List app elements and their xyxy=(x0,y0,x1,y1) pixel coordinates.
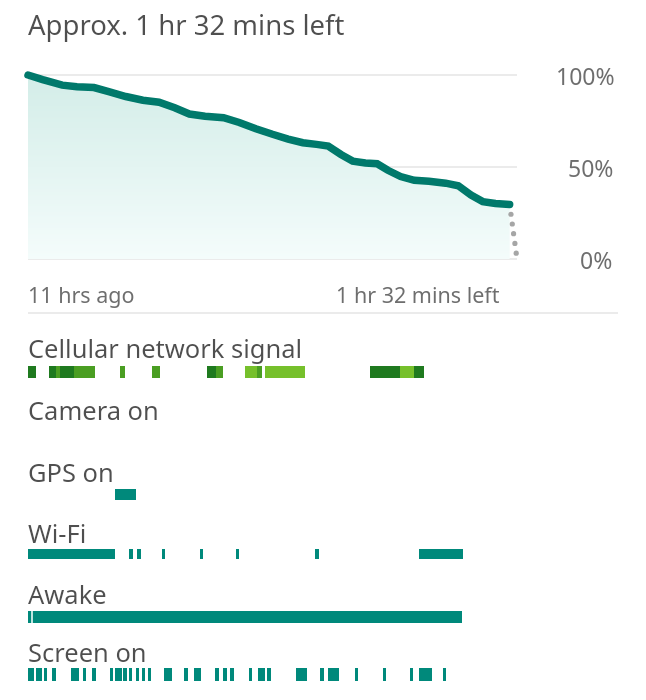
staticText: Approx. 1 hr 32 mins left xyxy=(28,6,345,43)
button[interactable]: Approx. 1 hr 32 mins left xyxy=(0,0,646,700)
staticText: Camera on xyxy=(28,393,159,428)
staticText: 100% xyxy=(556,60,615,91)
staticText: Wi-Fi xyxy=(28,516,87,551)
staticText: 1 hr 32 mins left xyxy=(336,280,500,309)
staticText: Awake xyxy=(28,577,107,612)
staticText: 11 hrs ago xyxy=(28,280,135,309)
staticText: 0% xyxy=(580,244,613,275)
staticText: Cellular network signal xyxy=(28,331,303,366)
staticText: GPS on xyxy=(28,455,114,490)
staticText: Screen on xyxy=(28,635,147,670)
staticText: 50% xyxy=(568,152,614,183)
